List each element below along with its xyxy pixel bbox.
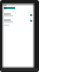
- button[interactable]: [3, 18, 34, 24]
- button[interactable]: [3, 12, 34, 18]
- button[interactable]: [3, 6, 33, 11]
